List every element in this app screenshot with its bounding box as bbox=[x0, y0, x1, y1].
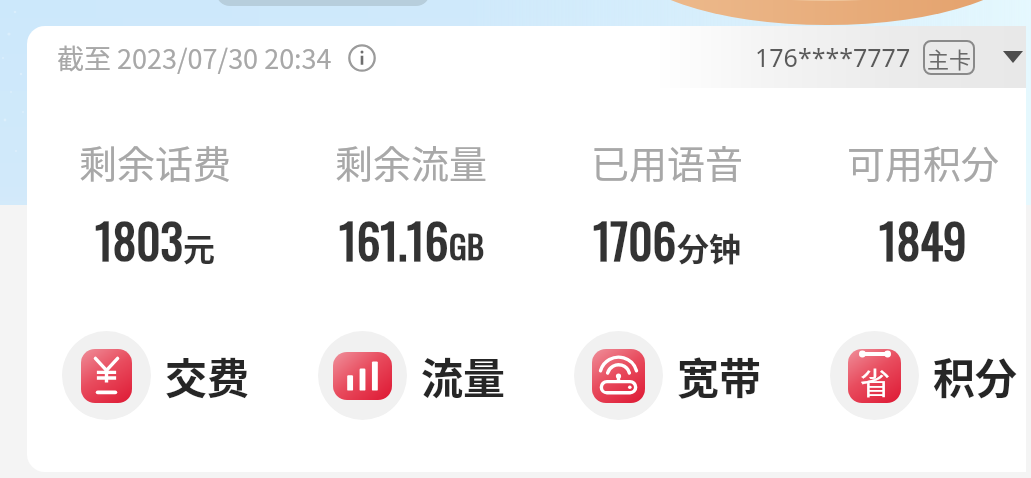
staticText: 积分 bbox=[933, 345, 1018, 406]
staticText: 截至 2023/07/30 20:34 bbox=[57, 38, 332, 77]
staticText: 宽带 bbox=[677, 345, 762, 406]
button[interactable]: 交费 bbox=[27, 327, 283, 423]
button[interactable]: 省 bbox=[795, 327, 1026, 423]
staticText: 主卡 bbox=[927, 42, 972, 74]
staticText: 省 bbox=[860, 359, 890, 402]
button[interactable]: 已用语音 bbox=[539, 134, 795, 275]
staticText: 161.16 bbox=[339, 205, 449, 275]
button[interactable]: 宽带 bbox=[539, 327, 795, 423]
staticText: 分钟 bbox=[677, 224, 742, 270]
staticText: 已用语音 bbox=[591, 134, 744, 189]
staticText: 1849 bbox=[879, 205, 967, 275]
staticText: 剩余流量 bbox=[335, 134, 488, 189]
button[interactable]: 176****7777 bbox=[655, 26, 1026, 88]
button[interactable]: 剩余话费 bbox=[27, 134, 283, 275]
other: 切换号码 bbox=[1000, 44, 1026, 70]
staticText: 交费 bbox=[165, 345, 250, 406]
staticText: 元 bbox=[183, 224, 216, 270]
staticText: 1803 bbox=[95, 205, 183, 275]
button[interactable]: 剩余流量 bbox=[283, 134, 539, 275]
button[interactable]: 说明 bbox=[347, 43, 377, 73]
staticText: 176****7777 bbox=[755, 40, 911, 74]
staticText: GB bbox=[449, 221, 484, 270]
staticText: 1706 bbox=[593, 205, 677, 275]
staticText: 流量 bbox=[421, 345, 506, 406]
staticText: 剩余话费 bbox=[79, 134, 232, 189]
button[interactable]: 可用积分 bbox=[795, 134, 1026, 275]
button[interactable]: 流量 bbox=[283, 327, 539, 423]
staticText: 可用积分 bbox=[847, 134, 1000, 189]
